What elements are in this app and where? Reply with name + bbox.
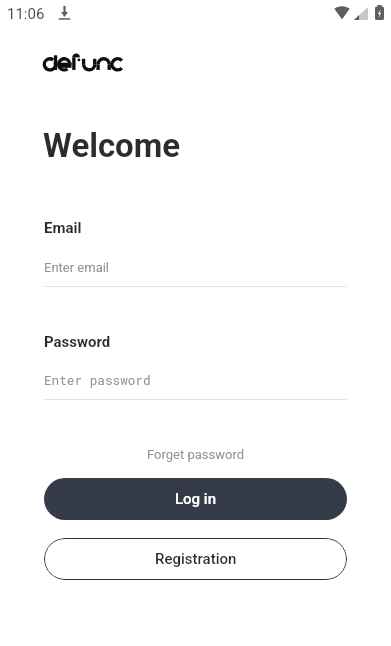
staticText: Forget password [147, 447, 245, 462]
staticText: Welcome [43, 126, 181, 165]
button[interactable]: Forget password [44, 442, 347, 466]
staticText: Enter email [44, 260, 110, 275]
staticText: Log in [175, 490, 217, 508]
staticText: Email [44, 219, 82, 237]
button[interactable]: Registration [44, 538, 347, 580]
button[interactable]: Log in [44, 478, 347, 520]
button[interactable] [44, 328, 347, 401]
staticText: Password [44, 333, 111, 351]
staticText: Enter password [44, 372, 151, 389]
staticText: Registration [155, 550, 237, 568]
other: Download [58, 5, 71, 20]
other: defunc [42, 53, 121, 74]
other: Mobile signal [354, 7, 368, 20]
other: Wi-Fi [334, 6, 350, 19]
other: Battery charging [375, 5, 384, 20]
staticText: 11:06 [7, 5, 45, 23]
button[interactable] [44, 214, 347, 288]
